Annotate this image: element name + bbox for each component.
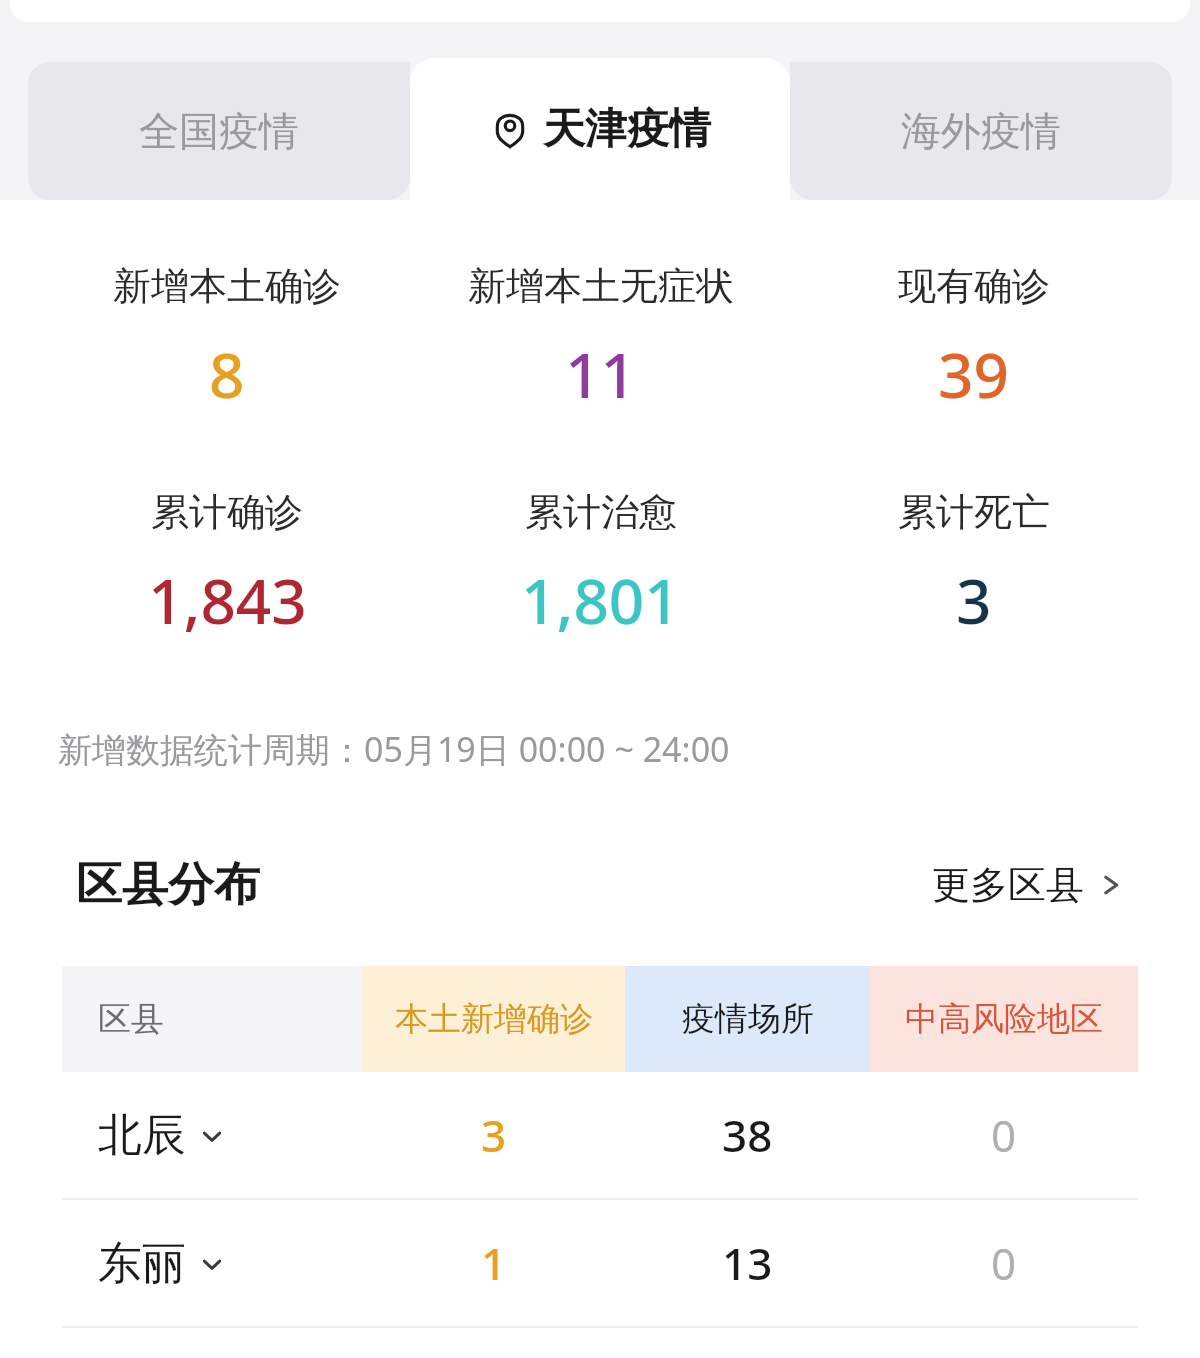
staticText: 1 bbox=[481, 1233, 507, 1293]
button[interactable]: 东丽 bbox=[62, 1200, 1138, 1326]
button[interactable]: 海外疫情 bbox=[790, 62, 1172, 200]
staticText: 3 bbox=[481, 1105, 507, 1165]
staticText: 1,843 bbox=[148, 558, 307, 642]
staticText: 累计治愈 bbox=[525, 488, 677, 536]
staticText: 累计确诊 bbox=[151, 488, 303, 536]
staticText: 区县 bbox=[98, 998, 164, 1040]
staticText: 38 bbox=[722, 1105, 773, 1165]
staticText: 东丽 bbox=[98, 1236, 186, 1291]
staticText: 本土新增确诊 bbox=[395, 998, 593, 1040]
staticText: 中高风险地区 bbox=[905, 998, 1103, 1040]
staticText: 1,801 bbox=[521, 558, 680, 642]
staticText: 疫情场所 bbox=[682, 998, 814, 1040]
staticText: 累计死亡 bbox=[898, 488, 1050, 536]
staticText: 新增本土确诊 bbox=[113, 262, 341, 310]
staticText: 海外疫情 bbox=[901, 106, 1061, 156]
staticText: 区县分布 bbox=[76, 856, 260, 914]
staticText: 0 bbox=[991, 1105, 1017, 1165]
button[interactable]: 更多区县 bbox=[932, 861, 1124, 909]
staticText: 0 bbox=[991, 1233, 1017, 1293]
staticText: 39 bbox=[938, 332, 1009, 416]
staticText: 现有确诊 bbox=[898, 262, 1050, 310]
staticText: 北辰 bbox=[98, 1108, 186, 1163]
button[interactable]: 天津疫情 bbox=[410, 58, 790, 200]
staticText: 13 bbox=[722, 1233, 773, 1293]
staticText: 天津疫情 bbox=[543, 103, 711, 156]
staticText: 全国疫情 bbox=[139, 106, 299, 156]
button[interactable]: 全国疫情 bbox=[28, 62, 410, 200]
staticText: 3 bbox=[956, 558, 992, 642]
staticText: 11 bbox=[565, 332, 636, 416]
staticText: 新增本土无症状 bbox=[468, 262, 734, 310]
staticText: 8 bbox=[209, 332, 245, 416]
staticText: 更多区县 bbox=[932, 861, 1084, 909]
staticText: 新增数据统计周期：05月19日 00:00 ~ 24:00 bbox=[58, 726, 730, 772]
button[interactable]: 北辰 bbox=[62, 1072, 1138, 1198]
